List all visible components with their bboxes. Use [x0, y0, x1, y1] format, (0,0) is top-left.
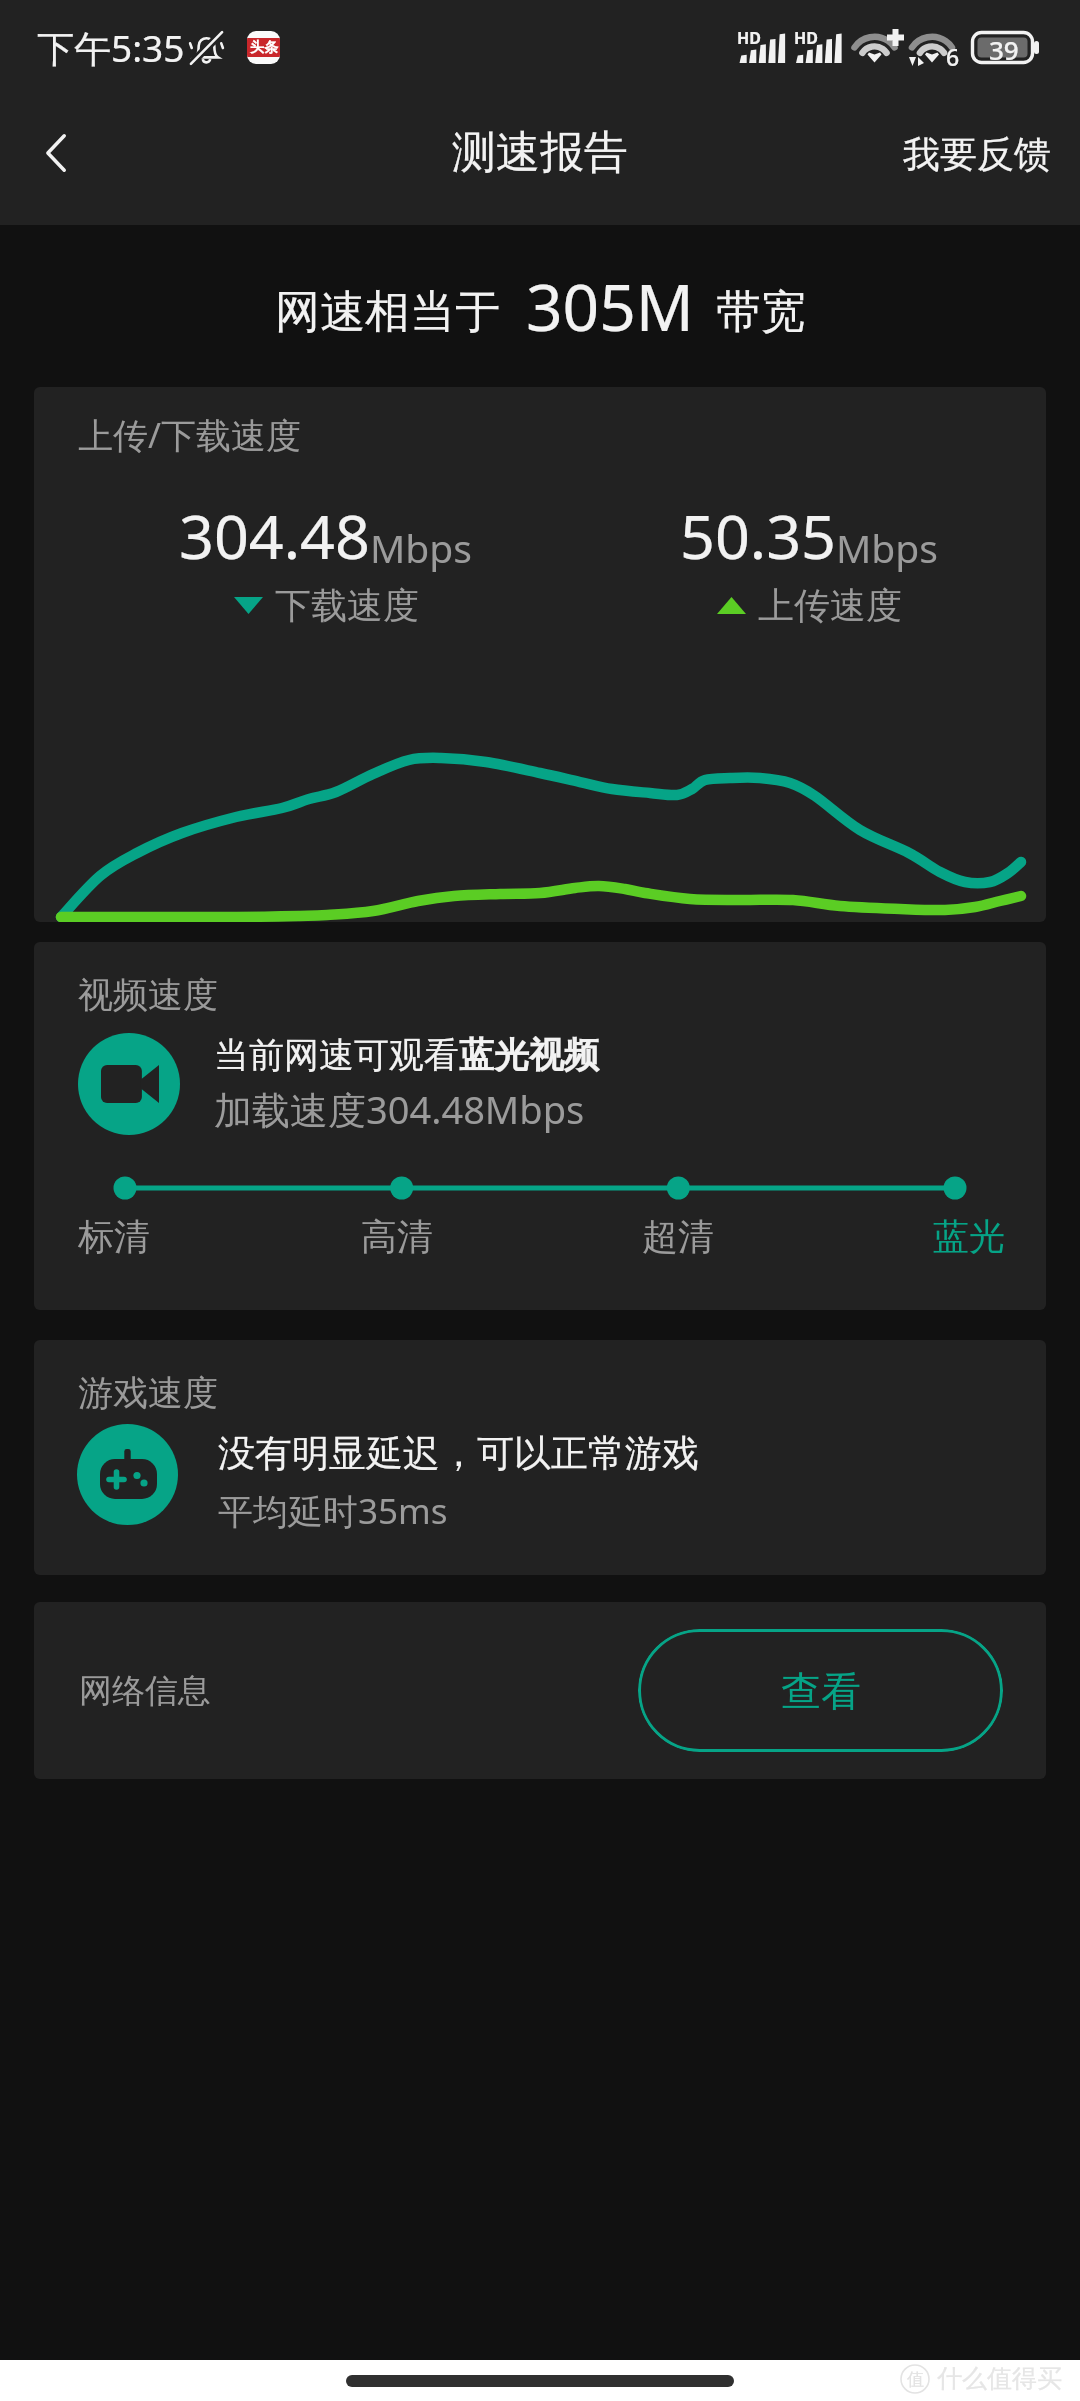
staticText: 网络信息	[79, 1670, 211, 1712]
staticText: 我要反馈	[903, 131, 1051, 178]
staticText: 上传速度	[758, 583, 902, 628]
staticText: 什么值得买	[937, 2363, 1062, 2394]
staticText: 头条	[250, 39, 278, 57]
staticText: 标清	[78, 1214, 150, 1259]
staticText: 没有明显延迟，可以正常游戏	[218, 1430, 699, 1477]
staticText: 39	[989, 32, 1019, 67]
staticText: 查看	[781, 1666, 861, 1716]
staticText: 测速报告	[452, 125, 628, 180]
staticText: 304.48	[179, 494, 370, 577]
staticText: 高清	[361, 1214, 433, 1259]
staticText: 平均延时35ms	[218, 1487, 448, 1535]
staticText: Mbps	[370, 521, 473, 574]
button[interactable]: 我要反馈	[874, 92, 1080, 217]
button[interactable]: Back	[0, 95, 110, 215]
staticText: 50.35	[680, 494, 836, 577]
staticText: 超清	[642, 1214, 714, 1259]
staticText: 下午5:35	[37, 22, 185, 73]
staticText: 视频速度	[78, 973, 218, 1017]
staticText: 当前网速可观看蓝光视频	[214, 1033, 599, 1077]
staticText: HD	[794, 27, 818, 49]
staticText: 6	[946, 41, 960, 72]
staticText: 带宽	[716, 284, 806, 341]
staticText: 游戏速度	[78, 1371, 218, 1415]
staticText: 加载速度304.48Mbps	[214, 1083, 585, 1135]
staticText: 值	[907, 2369, 924, 2390]
button[interactable]: 查看	[638, 1629, 1003, 1752]
staticText: 上传/下载速度	[78, 411, 302, 459]
staticText: HD	[737, 27, 761, 49]
staticText: 305M	[526, 263, 694, 350]
staticText: 网速相当于	[275, 284, 500, 341]
staticText: 下载速度	[275, 583, 419, 628]
staticText: 蓝光	[933, 1214, 1005, 1259]
staticText: Mbps	[836, 521, 939, 574]
